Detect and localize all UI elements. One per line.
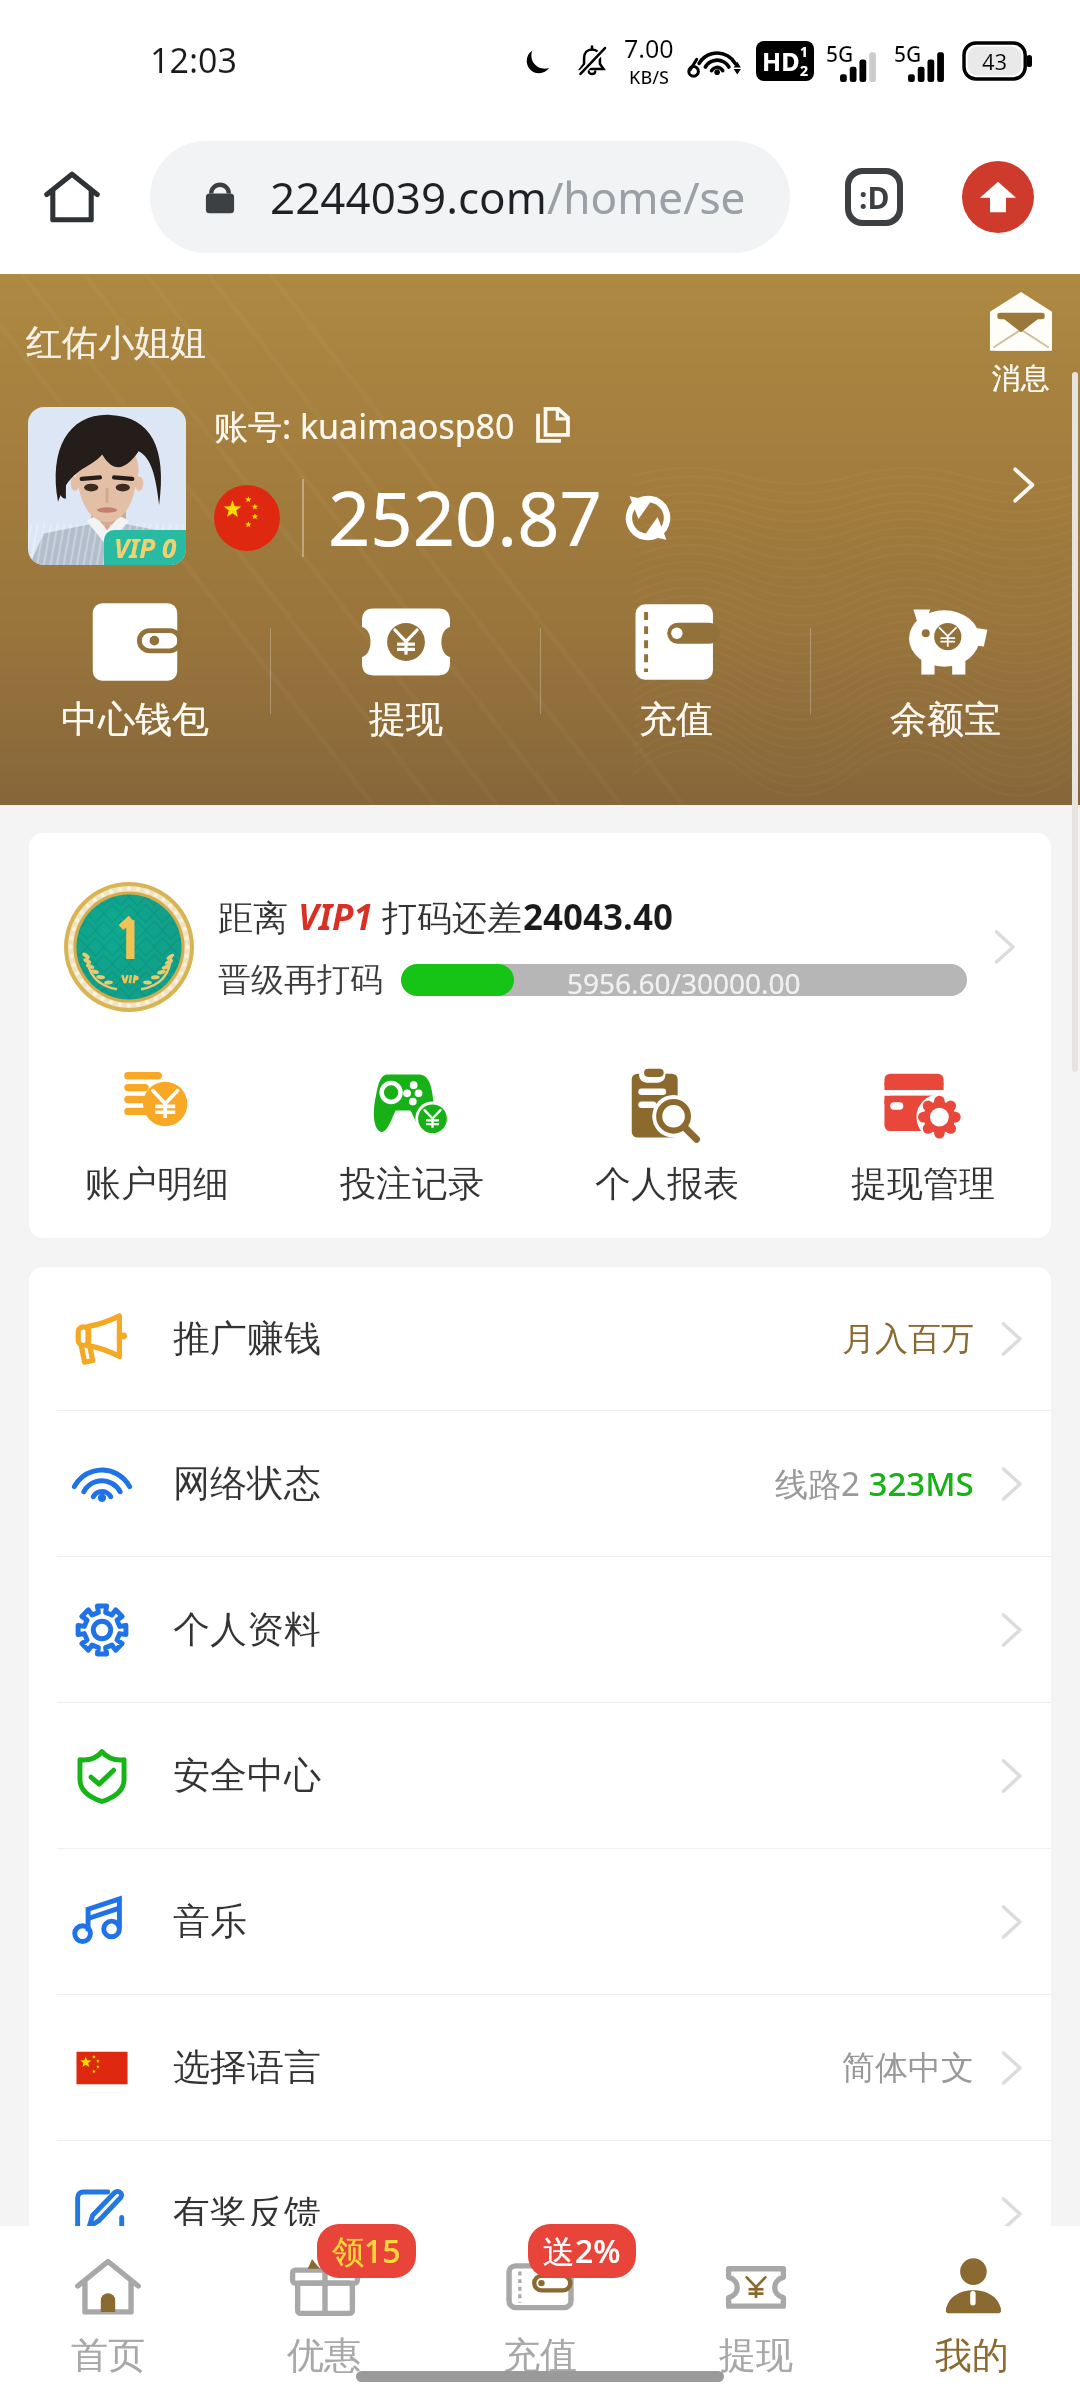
- button[interactable]: Reader mode: [840, 163, 908, 231]
- staticText: 领15: [332, 2229, 401, 2273]
- button[interactable]: 首页: [0, 2250, 216, 2379]
- staticText: 5956.60/30000.00: [567, 964, 801, 996]
- staticText: 个人报表: [595, 1161, 739, 1206]
- button[interactable]: 充值: [541, 598, 810, 743]
- staticText: 账户明细: [85, 1161, 229, 1206]
- staticText: 提现: [369, 696, 443, 743]
- staticText: 送2%: [543, 2229, 621, 2273]
- button[interactable]: 选择语言: [29, 1995, 1051, 2140]
- staticText: 投注记录: [340, 1161, 484, 1206]
- staticText: 323MS: [860, 1461, 974, 1506]
- button[interactable]: 安全中心: [29, 1703, 1051, 1848]
- button[interactable]: 消息: [988, 290, 1054, 397]
- button[interactable]: 送2%: [432, 2250, 648, 2379]
- button[interactable]: 提现: [648, 2250, 864, 2379]
- staticText: 推广赚钱: [173, 1315, 321, 1362]
- staticText: VIP1: [298, 893, 373, 941]
- button[interactable]: 音乐: [29, 1849, 1051, 1994]
- staticText: 2: [800, 61, 809, 80]
- button[interactable]: 提现管理: [795, 1063, 1051, 1206]
- staticText: VIP 0: [114, 530, 177, 565]
- staticText: 2520.87: [328, 467, 602, 568]
- button[interactable]: 我的: [864, 2250, 1080, 2379]
- staticText: 充值: [639, 696, 713, 743]
- staticText: KB/S: [629, 65, 669, 90]
- staticText: 优惠: [287, 2332, 361, 2379]
- staticText: 5G: [894, 40, 922, 69]
- button[interactable]: 提现: [271, 598, 540, 743]
- button[interactable]: Home: [28, 153, 116, 241]
- staticText: 1: [800, 42, 809, 61]
- button[interactable]: 推广赚钱: [29, 1267, 1051, 1410]
- staticText: 12:03: [150, 37, 237, 83]
- staticText: 2244039.com: [270, 167, 547, 227]
- button[interactable]: Refresh balance: [620, 490, 676, 546]
- button[interactable]: 账户明细: [29, 1063, 284, 1206]
- staticText: 43: [982, 46, 1008, 76]
- staticText: 充值: [503, 2332, 577, 2379]
- button[interactable]: 个人资料: [29, 1557, 1051, 1702]
- button[interactable]: Scroll to top: [962, 161, 1034, 233]
- button[interactable]: 余额宝: [811, 598, 1080, 743]
- staticText: 消息: [992, 360, 1050, 397]
- staticText: 提现管理: [851, 1161, 995, 1206]
- staticText: :D: [859, 177, 890, 218]
- staticText: 红佑小姐姐: [26, 320, 206, 365]
- staticText: 有奖反馈: [173, 2190, 321, 2237]
- staticText: 余额宝: [890, 696, 1001, 743]
- button[interactable]: 个人报表: [539, 1063, 795, 1206]
- button[interactable]: 网络状态: [29, 1411, 1051, 1556]
- staticText: 我的: [935, 2332, 1009, 2379]
- staticText: 月入百万: [842, 1318, 974, 1360]
- button[interactable]: 有奖反馈: [29, 2141, 1051, 2286]
- staticText: 5G: [826, 40, 854, 69]
- staticText: 账号: kuaimaosp80: [214, 403, 515, 449]
- button[interactable]: 2244039.com: [150, 141, 790, 253]
- staticText: 选择语言: [173, 2044, 321, 2091]
- staticText: 7.00: [624, 31, 674, 65]
- staticText: 音乐: [173, 1898, 247, 1945]
- button[interactable]: Copy account: [531, 404, 575, 448]
- staticText: 打码还差: [373, 893, 523, 941]
- staticText: HD: [762, 44, 800, 78]
- staticText: 中心钱包: [61, 696, 209, 743]
- staticText: 简体中文: [842, 2047, 974, 2089]
- staticText: 24043.40: [523, 893, 673, 941]
- staticText: 安全中心: [173, 1752, 321, 1799]
- staticText: 线路2: [775, 1461, 860, 1506]
- button[interactable]: 投注记录: [284, 1063, 539, 1206]
- staticText: 提现: [719, 2332, 793, 2379]
- staticText: 距离: [218, 893, 298, 941]
- staticText: 首页: [71, 2332, 145, 2379]
- button[interactable]: 领15: [216, 2250, 432, 2379]
- staticText: 个人资料: [173, 1606, 321, 1653]
- button[interactable]: 中心钱包: [0, 598, 270, 743]
- button[interactable]: VIP 0: [28, 403, 1060, 568]
- staticText: 晋级再打码: [218, 959, 383, 1001]
- staticText: /home/se: [547, 167, 746, 227]
- staticText: 网络状态: [173, 1460, 321, 1507]
